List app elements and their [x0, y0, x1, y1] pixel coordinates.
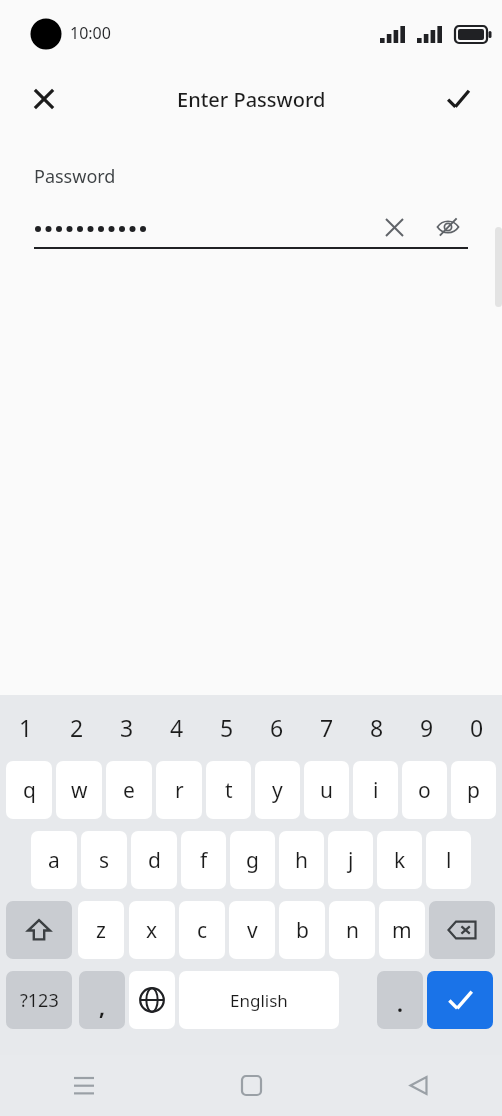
- staticText: d: [148, 846, 161, 875]
- staticText: 9: [420, 712, 434, 743]
- staticText: m: [392, 916, 412, 945]
- staticText: 5: [220, 712, 234, 743]
- staticText: s: [99, 846, 110, 875]
- button[interactable]: .: [377, 971, 423, 1029]
- button[interactable]: 5: [202, 699, 252, 755]
- button[interactable]: 7: [302, 699, 352, 755]
- button[interactable]: o: [402, 761, 447, 819]
- staticText: b: [296, 916, 309, 945]
- button[interactable]: 2: [51, 699, 102, 755]
- button[interactable]: g: [230, 831, 275, 889]
- staticText: w: [71, 776, 88, 805]
- button[interactable]: v: [229, 901, 275, 959]
- button[interactable]: w: [56, 761, 102, 819]
- staticText: 4: [170, 712, 184, 743]
- button[interactable]: 6: [252, 699, 302, 755]
- staticText: Enter Password: [177, 86, 326, 113]
- staticText: r: [175, 776, 184, 805]
- button[interactable]: key: [427, 971, 493, 1029]
- staticText: 8: [370, 712, 384, 743]
- button[interactable]: Close: [20, 75, 68, 123]
- staticText: j: [348, 846, 354, 875]
- staticText: v: [247, 916, 258, 945]
- staticText: .: [397, 990, 403, 1019]
- staticText: i: [373, 776, 379, 805]
- staticText: f: [200, 846, 208, 875]
- button[interactable]: 3: [102, 699, 152, 755]
- button[interactable]: p: [451, 761, 496, 819]
- staticText: c: [197, 916, 208, 945]
- button[interactable]: 1: [0, 699, 51, 755]
- button[interactable]: English: [179, 971, 339, 1029]
- staticText: e: [123, 776, 135, 805]
- button[interactable]: 9: [402, 699, 452, 755]
- staticText: 7: [320, 712, 334, 743]
- staticText: 2: [70, 712, 84, 743]
- staticText: 1: [19, 712, 33, 743]
- button[interactable]: m: [379, 901, 425, 959]
- button[interactable]: key: [129, 971, 175, 1029]
- staticText: a: [48, 846, 60, 875]
- button[interactable]: x: [129, 901, 175, 959]
- button[interactable]: t: [206, 761, 251, 819]
- staticText: 10:00: [70, 22, 111, 44]
- button[interactable]: y: [255, 761, 300, 819]
- button[interactable]: l: [426, 831, 471, 889]
- button[interactable]: r: [156, 761, 202, 819]
- button[interactable]: b: [279, 901, 325, 959]
- button[interactable]: Show password: [428, 207, 468, 247]
- staticText: n: [346, 916, 359, 945]
- button[interactable]: f: [181, 831, 226, 889]
- staticText: o: [418, 776, 431, 805]
- button[interactable]: j: [328, 831, 373, 889]
- staticText: y: [272, 776, 283, 805]
- button[interactable]: Clear: [374, 207, 414, 247]
- button[interactable]: ,: [79, 971, 125, 1029]
- staticText: h: [295, 846, 308, 875]
- staticText: ,: [99, 993, 105, 1022]
- button[interactable]: q: [6, 761, 52, 819]
- button[interactable]: h: [279, 831, 324, 889]
- button[interactable]: k: [377, 831, 422, 889]
- staticText: u: [320, 776, 333, 805]
- staticText: p: [467, 776, 480, 805]
- button[interactable]: 4: [152, 699, 202, 755]
- button[interactable]: a: [31, 831, 77, 889]
- staticText: k: [394, 846, 406, 875]
- staticText: q: [23, 776, 36, 805]
- button[interactable]: i: [353, 761, 398, 819]
- staticText: z: [96, 916, 106, 945]
- staticText: l: [446, 846, 452, 875]
- button[interactable]: z: [78, 901, 124, 959]
- staticText: English: [230, 989, 288, 1012]
- staticText: 3: [120, 712, 134, 743]
- button[interactable]: u: [304, 761, 349, 819]
- button[interactable]: 0: [452, 699, 502, 755]
- staticText: Password: [34, 164, 116, 189]
- button[interactable]: Confirm: [434, 75, 482, 123]
- button[interactable]: Back: [335, 1055, 502, 1116]
- staticText: x: [146, 916, 158, 945]
- button[interactable]: n: [329, 901, 375, 959]
- staticText: g: [246, 846, 259, 875]
- button[interactable]: Home: [168, 1055, 335, 1116]
- button[interactable]: ?123: [6, 971, 72, 1029]
- button[interactable]: 8: [352, 699, 402, 755]
- button[interactable]: key: [429, 901, 495, 959]
- button[interactable]: key: [6, 901, 72, 959]
- button[interactable]: e: [106, 761, 152, 819]
- staticText: t: [225, 776, 233, 805]
- button[interactable]: d: [131, 831, 177, 889]
- staticText: ?123: [20, 988, 59, 1013]
- staticText: 6: [270, 712, 284, 743]
- button[interactable]: Recents: [0, 1055, 168, 1116]
- button[interactable]: s: [81, 831, 127, 889]
- staticText: 0: [470, 712, 484, 743]
- button[interactable]: c: [179, 901, 225, 959]
